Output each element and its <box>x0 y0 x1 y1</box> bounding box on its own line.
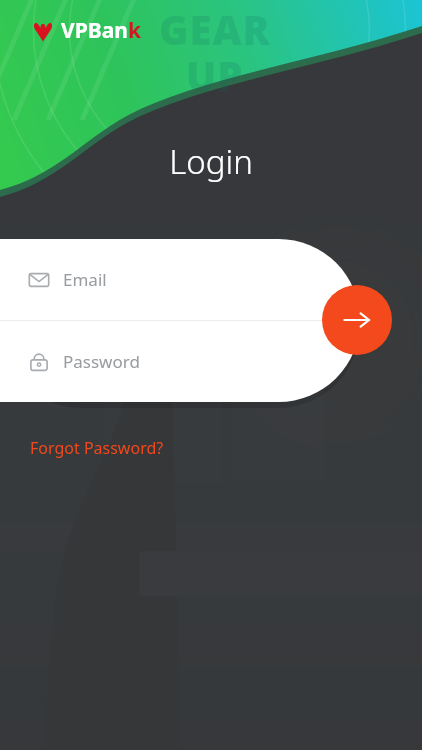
staticText: Forgot Password? <box>30 437 164 459</box>
staticText: GEAR <box>159 2 271 56</box>
button[interactable]: Sign in <box>322 285 392 355</box>
button[interactable]: VPBank <box>28 14 144 47</box>
staticText: UP <box>186 48 244 102</box>
staticText: Password <box>63 350 140 373</box>
staticText: VPBan <box>61 16 128 45</box>
button[interactable]: Forgot Password? <box>28 434 166 462</box>
staticText: k <box>128 16 142 45</box>
staticText: Email <box>63 268 107 291</box>
staticText: Login <box>0 139 422 184</box>
button[interactable]: Email <box>0 239 360 320</box>
button[interactable]: Password <box>0 321 360 402</box>
